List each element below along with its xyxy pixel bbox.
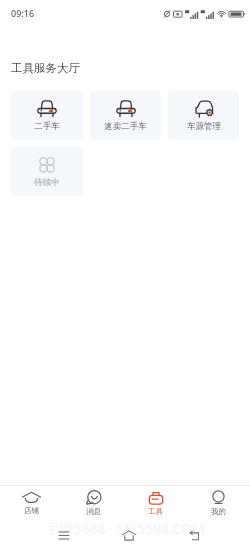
staticText: 手游5688 · MX5588.COM bbox=[0, 519, 250, 538]
button[interactable]: Back bbox=[186, 527, 202, 543]
button[interactable]: 速卖二手车 bbox=[90, 91, 161, 140]
button[interactable]: 店铺 bbox=[0, 486, 62, 515]
button[interactable]: 车源管理 bbox=[168, 91, 239, 140]
button[interactable]: 待续中 bbox=[11, 147, 83, 196]
staticText: 09:16 bbox=[11, 7, 35, 19]
staticText: 店铺 bbox=[24, 506, 39, 515]
button[interactable]: Recent apps bbox=[56, 527, 72, 543]
button[interactable]: 我的 bbox=[187, 486, 250, 516]
button[interactable]: 二手车 bbox=[11, 91, 83, 140]
button[interactable]: 工具 bbox=[124, 486, 187, 516]
staticText: 消息 bbox=[86, 507, 101, 516]
staticText: 待续中 bbox=[34, 177, 60, 188]
staticText: 车源管理 bbox=[187, 121, 221, 132]
staticText: 速卖二手车 bbox=[104, 121, 147, 132]
button[interactable]: 消息 bbox=[62, 486, 124, 516]
staticText: 我的 bbox=[211, 507, 226, 516]
staticText: 工具服务大厅 bbox=[11, 61, 80, 75]
staticText: 工具 bbox=[148, 507, 163, 516]
button[interactable]: Home bbox=[121, 527, 137, 543]
staticText: 二手车 bbox=[34, 121, 60, 132]
